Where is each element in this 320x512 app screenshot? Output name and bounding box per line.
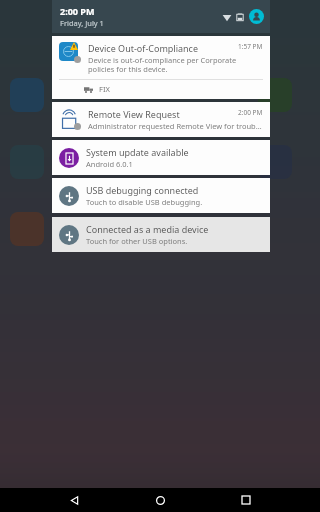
staticText: FIX: [99, 84, 110, 94]
staticText: 1:57 PM: [238, 42, 263, 51]
button[interactable]: FIX: [52, 80, 270, 99]
staticText: Connected as a media device: [86, 223, 263, 235]
staticText: Device Out-of-Compliance: [88, 42, 238, 54]
staticText: Remote View Request: [88, 108, 238, 120]
button[interactable]: Device Out-of-Compliance: [52, 36, 270, 99]
staticText: 2:00 PM: [238, 108, 263, 117]
staticText: Device is out-of-compliance per Corporat…: [88, 55, 263, 74]
button[interactable]: Connected as a media device: [52, 217, 270, 252]
staticText: Friday, July 1: [60, 18, 104, 28]
staticText: Touch to disable USB debugging.: [86, 197, 203, 207]
button[interactable]: System update available: [52, 140, 270, 175]
button[interactable]: Recent apps: [234, 488, 258, 512]
button[interactable]: Home: [148, 488, 172, 512]
button[interactable]: Remote View Request: [52, 102, 270, 137]
staticText: Android 6.0.1: [86, 159, 133, 169]
staticText: USB debugging connected: [86, 184, 263, 196]
button[interactable]: Back: [62, 488, 86, 512]
button[interactable]: User profile: [249, 9, 264, 24]
staticText: 2:00 PM: [60, 5, 95, 17]
staticText: System update available: [86, 146, 263, 158]
staticText: Administrator requested Remote View for …: [88, 121, 263, 131]
button[interactable]: USB debugging connected: [52, 178, 270, 213]
staticText: Touch for other USB options.: [86, 236, 188, 246]
